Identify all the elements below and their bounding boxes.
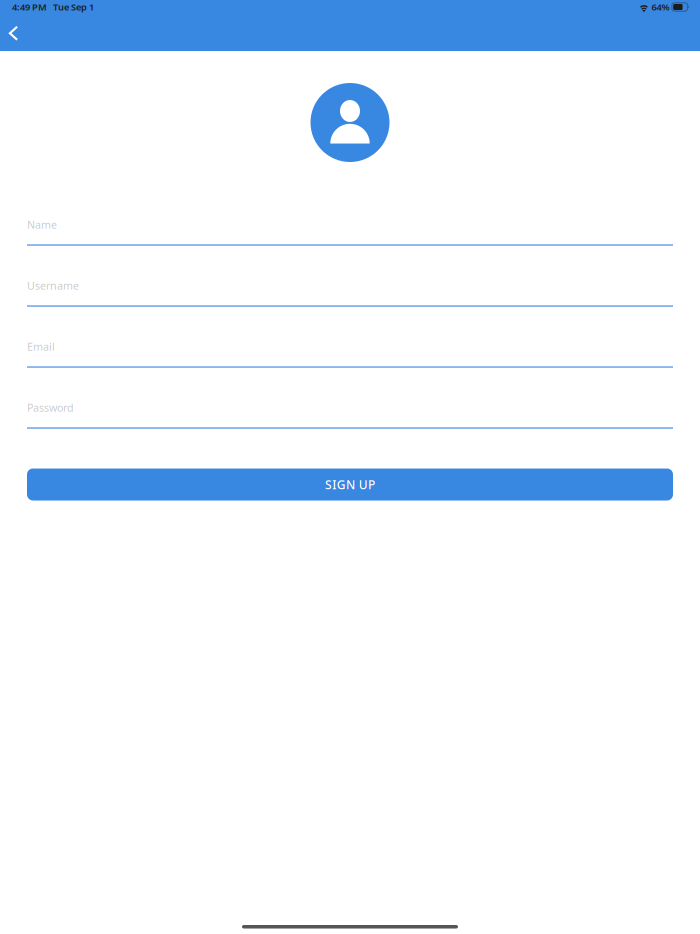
staticText: SIGN UP: [325, 476, 375, 492]
staticText: Name: [27, 217, 57, 232]
staticText: 64%: [651, 1, 669, 13]
button[interactable]: Email: [27, 339, 673, 368]
staticText: Password: [27, 400, 74, 415]
staticText: Tue Sep 1: [53, 1, 94, 13]
staticText: 4:49 PM: [12, 1, 47, 13]
button[interactable]: SIGN UP: [27, 468, 673, 500]
staticText: Username: [27, 278, 79, 293]
button[interactable]: Username: [27, 278, 673, 307]
button[interactable]: Back: [0, 24, 26, 42]
button[interactable]: Name: [27, 217, 673, 246]
staticText: Email: [27, 339, 55, 354]
button[interactable]: Password: [27, 400, 673, 429]
